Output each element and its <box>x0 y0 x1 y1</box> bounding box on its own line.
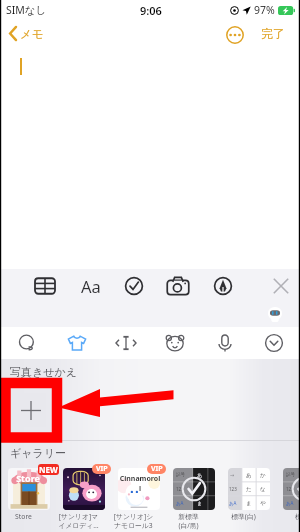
button[interactable]: → <box>228 466 271 530</box>
staticText: や <box>260 500 266 507</box>
staticText: 123 <box>286 486 294 492</box>
staticText: メモ <box>20 27 44 41</box>
button[interactable]: Camera <box>164 272 192 300</box>
button[interactable]: Add photo skin <box>16 393 46 427</box>
staticText: 標準(白) <box>222 512 265 521</box>
staticText: VIP <box>151 464 163 474</box>
staticText: [サンリオ]シ ナモロール3 <box>112 512 155 530</box>
button[interactable]: 記号 <box>283 466 300 530</box>
button[interactable]: Skins <box>64 330 90 356</box>
button[interactable]: Markup <box>210 273 236 299</box>
staticText: 完了 <box>261 26 285 41</box>
staticText: 記号 <box>176 472 185 478</box>
staticText: 123 <box>176 486 184 492</box>
staticText: ま <box>246 500 252 507</box>
button[interactable]: Hide keyboard <box>261 330 287 356</box>
staticText: NEW <box>39 464 58 475</box>
staticText: 標 <box>277 512 300 521</box>
staticText: あA <box>286 500 294 506</box>
button[interactable]: Table <box>32 273 58 299</box>
staticText: 9:06 <box>140 3 162 18</box>
staticText: Aa <box>81 275 101 297</box>
staticText: 97% <box>254 3 275 17</box>
button[interactable]: [サンリオ]マ イメロディ… <box>63 466 106 530</box>
staticText: ま <box>197 500 203 506</box>
staticText: か <box>260 472 266 479</box>
staticText: あ <box>246 472 252 479</box>
button[interactable]: Assistant <box>264 305 286 324</box>
staticText: あA <box>229 500 237 506</box>
staticText: Store <box>8 472 48 484</box>
button[interactable]: 記号 <box>173 466 216 530</box>
button[interactable]: Emoji <box>162 330 188 356</box>
staticText: た <box>246 486 252 493</box>
staticText: Cinnamoroll <box>119 474 160 494</box>
button[interactable]: 完了 <box>261 26 285 41</box>
staticText: あA <box>176 500 184 506</box>
button[interactable]: Aa <box>78 274 104 298</box>
staticText: な <box>260 486 266 493</box>
staticText: [サンリオ]マ イメロディ… <box>57 512 100 530</box>
staticText: 新標準 (白/黒) <box>167 512 210 530</box>
button[interactable]: Checklist <box>121 273 147 299</box>
button[interactable]: Conversation <box>14 330 40 356</box>
staticText: → <box>230 472 235 478</box>
staticText: 記号 <box>286 472 295 478</box>
button[interactable]: メモ <box>9 26 44 41</box>
button[interactable]: Store <box>8 466 51 530</box>
button[interactable]: Move cursor <box>113 330 139 356</box>
staticText: 写真きせかえ <box>10 365 78 379</box>
staticText: Store <box>2 512 45 521</box>
button[interactable]: More options <box>226 26 244 44</box>
staticText: あ <box>197 472 203 478</box>
staticText: VIP <box>96 464 108 474</box>
button[interactable]: Close <box>269 274 293 298</box>
button[interactable]: Dictation <box>212 330 238 356</box>
button[interactable]: Cinnamoroll <box>118 466 161 530</box>
staticText: SIMなし <box>6 3 47 17</box>
staticText: 123 <box>229 486 237 492</box>
staticText: ギャラリー <box>10 446 67 460</box>
